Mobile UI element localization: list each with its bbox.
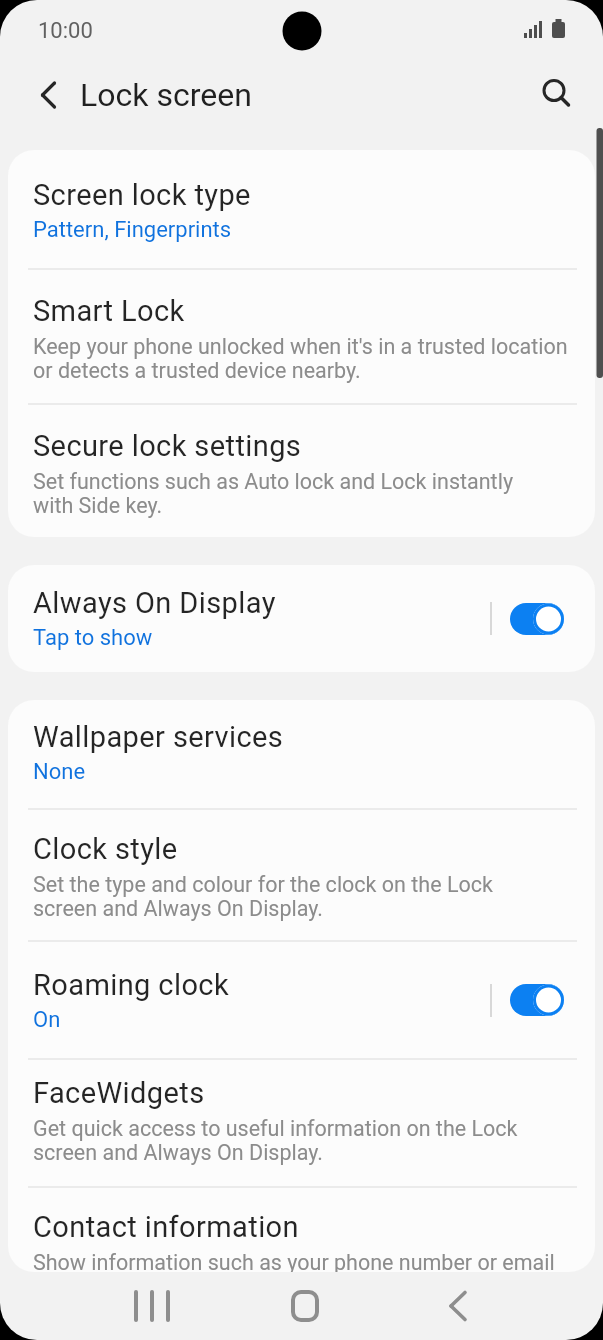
button[interactable] — [24, 71, 72, 119]
button[interactable]: Clock style — [8, 810, 595, 940]
button[interactable] — [510, 602, 564, 636]
staticText: On — [33, 1007, 61, 1033]
staticText: Set the type and colour for the clock on… — [33, 872, 493, 921]
button[interactable] — [510, 983, 564, 1017]
button[interactable]: Secure lock settings — [8, 405, 595, 537]
button[interactable]: Wallpaper services — [8, 700, 595, 808]
button[interactable] — [434, 1282, 482, 1330]
button[interactable] — [281, 1282, 329, 1330]
staticText: None — [33, 759, 86, 785]
staticText: Wallpaper services — [33, 720, 284, 754]
button[interactable]: Always On Display — [8, 565, 595, 672]
button[interactable]: Smart Lock — [8, 270, 595, 403]
staticText: Tap to show — [33, 625, 153, 651]
staticText: Secure lock settings — [33, 429, 302, 463]
staticText: Set functions such as Auto lock and Lock… — [33, 469, 514, 518]
staticText: Roaming clock — [33, 968, 230, 1002]
staticText: Contact information — [33, 1210, 299, 1244]
button[interactable]: FaceWidgets — [8, 1060, 595, 1186]
button[interactable] — [128, 1282, 176, 1330]
staticText: Clock style — [33, 832, 178, 866]
staticText: 10:00 — [38, 18, 93, 44]
staticText: Keep your phone unlocked when it's in a … — [33, 334, 568, 383]
staticText: Screen lock type — [33, 178, 251, 212]
staticText: Smart Lock — [33, 294, 185, 328]
staticText: Always On Display — [33, 586, 276, 620]
staticText: FaceWidgets — [33, 1076, 205, 1110]
button[interactable]: Contact information — [8, 1188, 595, 1272]
staticText: Pattern, Fingerprints — [33, 217, 232, 243]
button[interactable]: Screen lock type — [8, 150, 595, 268]
button[interactable]: Roaming clock — [8, 942, 595, 1058]
button[interactable] — [530, 71, 578, 119]
staticText: Lock screen — [80, 76, 252, 114]
staticText: Show information such as your phone numb… — [33, 1250, 555, 1272]
staticText: Get quick access to useful information o… — [33, 1116, 518, 1165]
